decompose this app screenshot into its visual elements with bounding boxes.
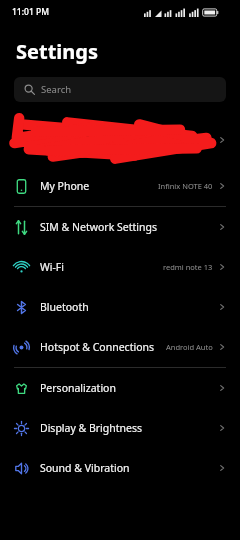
- button[interactable]: Wi-Fi: [0, 247, 240, 287]
- staticText: redmi note 13: [163, 262, 213, 272]
- staticText: Bluetooth: [40, 300, 89, 314]
- staticText: My Phone: [40, 179, 90, 193]
- button[interactable]: Sound & Vibration: [0, 448, 240, 488]
- button[interactable]: My Phone: [0, 166, 240, 206]
- staticText: Sound & Vibration: [40, 461, 130, 475]
- staticText: Hotspot & Connections: [40, 340, 154, 354]
- button[interactable]: SIM & Network Settings: [0, 207, 240, 247]
- staticText: 11:01 PM: [12, 6, 49, 18]
- staticText: Search: [41, 83, 72, 96]
- staticText: Infinix NOTE 40: [158, 181, 213, 191]
- staticText: SIM & Network Settings: [40, 220, 157, 234]
- staticText: Display & Brightness: [40, 421, 143, 435]
- button[interactable]: Hotspot & Connections: [0, 327, 240, 367]
- button[interactable]: Account: [0, 114, 240, 166]
- button[interactable]: Personalization: [0, 368, 240, 408]
- button[interactable]: Display & Brightness: [0, 408, 240, 448]
- staticText: Personalization: [40, 381, 116, 395]
- staticText: Settings: [16, 38, 98, 65]
- button[interactable]: Bluetooth: [0, 287, 240, 327]
- button[interactable]: Search: [14, 77, 226, 102]
- staticText: Android Auto: [166, 342, 213, 352]
- staticText: Wi-Fi: [40, 260, 65, 274]
